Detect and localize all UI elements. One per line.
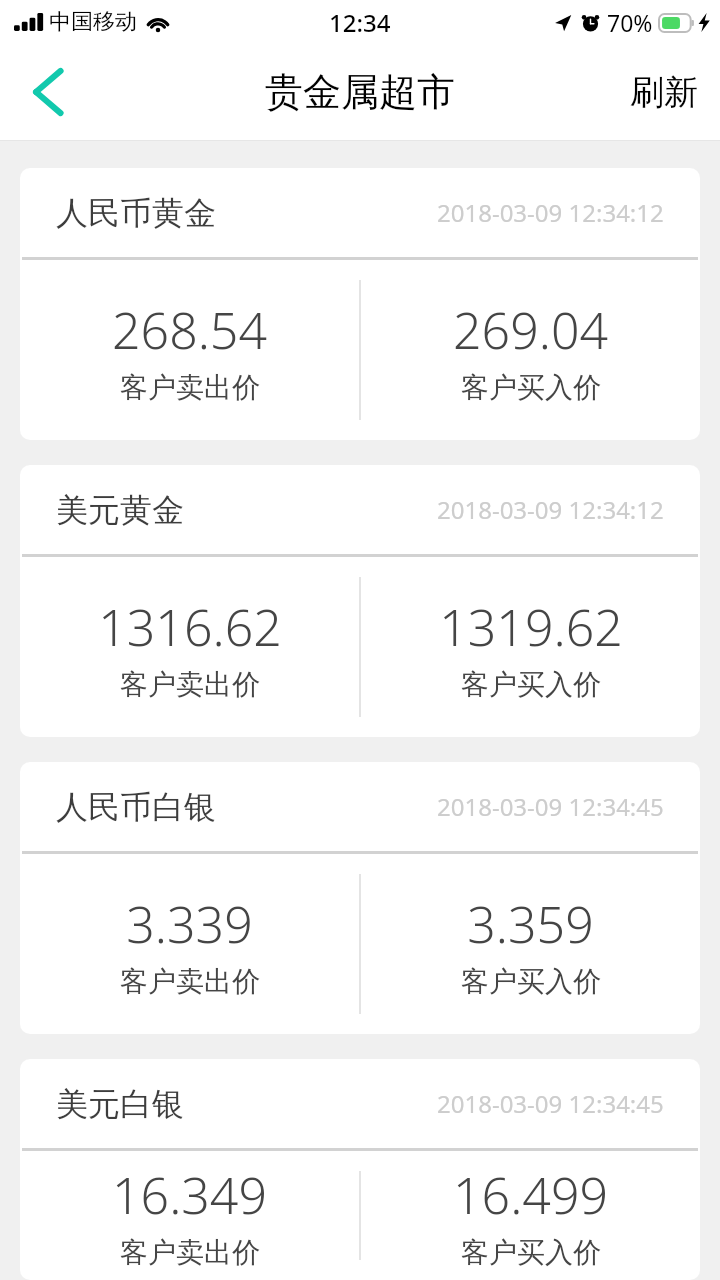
staticText: 16.499 — [453, 1161, 608, 1229]
staticText: 客户买入价 — [461, 370, 601, 405]
staticText: 人民币黄金 — [56, 193, 216, 233]
button[interactable]: 刷新 — [608, 55, 720, 130]
staticText: 70% — [607, 7, 653, 38]
staticText: 1316.62 — [98, 593, 282, 661]
staticText: 2018-03-09 12:34:45 — [437, 790, 664, 823]
button[interactable]: 美元黄金 — [20, 465, 700, 737]
staticText: 1319.62 — [439, 593, 623, 661]
staticText: 贵金属超市 — [265, 68, 455, 116]
staticText: 刷新 — [630, 71, 698, 114]
button[interactable]: 人民币黄金 — [20, 168, 700, 440]
staticText: 客户买入价 — [461, 1235, 601, 1270]
staticText: 269.04 — [453, 296, 608, 364]
staticText: 3.359 — [467, 890, 594, 958]
button[interactable]: 人民币白银 — [20, 762, 700, 1034]
staticText: 客户卖出价 — [120, 667, 260, 702]
staticText: 16.349 — [112, 1161, 267, 1229]
staticText: 3.339 — [126, 890, 253, 958]
staticText: 12:34 — [329, 6, 391, 39]
staticText: 2018-03-09 12:34:12 — [437, 493, 664, 526]
staticText: 客户买入价 — [461, 667, 601, 702]
staticText: 2018-03-09 12:34:45 — [437, 1087, 664, 1120]
staticText: 268.54 — [112, 296, 267, 364]
button[interactable]: Back — [16, 60, 80, 124]
staticText: 客户买入价 — [461, 964, 601, 999]
staticText: 美元黄金 — [56, 490, 184, 530]
staticText: 2018-03-09 12:34:12 — [437, 196, 664, 229]
staticText: 客户卖出价 — [120, 1235, 260, 1270]
button[interactable]: 美元白银 — [20, 1059, 700, 1280]
staticText: 人民币白银 — [56, 787, 216, 827]
staticText: 客户卖出价 — [120, 964, 260, 999]
staticText: 美元白银 — [56, 1084, 184, 1124]
staticText: 客户卖出价 — [120, 370, 260, 405]
staticText: 中国移动 — [49, 8, 137, 36]
